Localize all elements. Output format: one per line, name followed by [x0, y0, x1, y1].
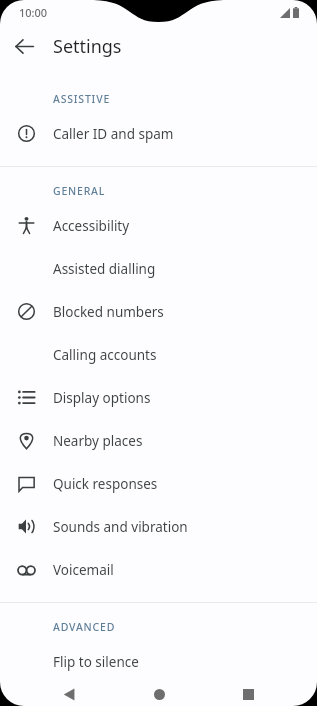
staticText: Settings [53, 34, 122, 59]
button[interactable]: Back [48, 683, 90, 706]
staticText: Assisted dialling [53, 260, 156, 278]
staticText: Sounds and vibration [53, 518, 188, 536]
button[interactable]: Sounds and vibration [0, 505, 317, 548]
button[interactable]: Home [138, 683, 180, 706]
button[interactable]: Display options [0, 376, 317, 419]
staticText: ADVANCED [53, 620, 116, 634]
button[interactable]: Assisted dialling [0, 247, 317, 290]
staticText: Flip to silence [53, 653, 139, 671]
staticText: ASSISTIVE [53, 92, 111, 106]
staticText: 10:00 [19, 5, 48, 20]
button[interactable]: Back [7, 29, 41, 63]
button[interactable]: Nearby places [0, 419, 317, 462]
staticText: Caller ID and spam [53, 125, 174, 143]
button[interactable]: Caller ID and spam [0, 112, 317, 155]
staticText: Nearby places [53, 432, 143, 450]
staticText: Blocked numbers [53, 303, 164, 321]
button[interactable]: Accessibility [0, 204, 317, 247]
button[interactable]: Recents [227, 683, 269, 706]
staticText: Voicemail [53, 561, 114, 579]
button[interactable]: Voicemail [0, 548, 317, 591]
staticText: Accessibility [53, 217, 130, 235]
staticText: Calling accounts [53, 346, 157, 364]
staticText: Quick responses [53, 475, 158, 493]
staticText: Display options [53, 389, 151, 407]
button[interactable]: Blocked numbers [0, 290, 317, 333]
button[interactable]: Flip to silence [0, 640, 317, 683]
button[interactable]: Quick responses [0, 462, 317, 505]
button[interactable]: Calling accounts [0, 333, 317, 376]
staticText: GENERAL [53, 184, 106, 198]
